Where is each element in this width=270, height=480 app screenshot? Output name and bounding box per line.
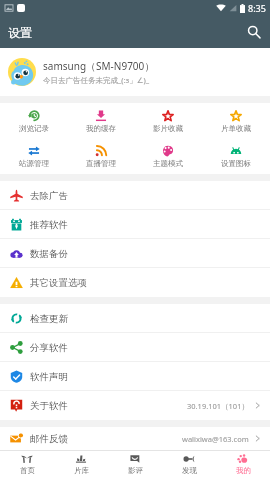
button[interactable]: 首页 xyxy=(0,451,54,480)
staticText: 首页 xyxy=(20,466,35,475)
staticText: 8:35 xyxy=(248,2,266,14)
button[interactable]: 影评 xyxy=(108,451,162,480)
staticText: 主题模式 xyxy=(153,159,183,168)
staticText: 去除广告 xyxy=(30,190,68,202)
staticText: 关于软件 xyxy=(30,400,68,412)
button[interactable]: 邮件反馈 xyxy=(0,427,270,450)
button[interactable]: 分享软件 xyxy=(0,333,270,362)
staticText: samsung（SM-N9700） xyxy=(43,59,155,73)
staticText: 分享软件 xyxy=(30,342,68,354)
staticText: 片单收藏 xyxy=(221,124,251,133)
button[interactable]: Search xyxy=(238,16,270,48)
button[interactable]: 主题模式 xyxy=(134,139,202,174)
button[interactable]: 片单收藏 xyxy=(202,103,270,139)
staticText: 检查更新 xyxy=(30,313,68,325)
button[interactable]: 直播管理 xyxy=(67,139,134,174)
button[interactable]: samsung（SM-N9700） xyxy=(0,48,270,96)
button[interactable]: 设置图标 xyxy=(202,139,270,174)
button[interactable]: 软件声明 xyxy=(0,362,270,391)
button[interactable]: 我的缓存 xyxy=(67,103,134,139)
button[interactable]: 推荐软件 xyxy=(0,210,270,239)
button[interactable]: 检查更新 xyxy=(0,304,270,333)
staticText: 站源管理 xyxy=(19,159,49,168)
staticText: 我的缓存 xyxy=(86,124,116,133)
staticText: 影片收藏 xyxy=(153,124,183,133)
button[interactable]: 影片收藏 xyxy=(134,103,202,139)
staticText: 影评 xyxy=(128,466,143,475)
staticText: 30.19.101（101） xyxy=(187,401,249,411)
button[interactable]: 关于软件 xyxy=(0,391,270,420)
staticText: 其它设置选项 xyxy=(30,277,87,289)
staticText: 今日去广告任务未完成_(:з」∠)_ xyxy=(43,75,150,85)
staticText: 设置 xyxy=(8,25,32,40)
staticText: walixiwa@163.com xyxy=(182,434,249,444)
button[interactable]: 我的 xyxy=(216,451,270,480)
staticText: 邮件反馈 xyxy=(30,433,68,445)
button[interactable]: 去除广告 xyxy=(0,181,270,210)
staticText: 数据备份 xyxy=(30,248,68,260)
button[interactable]: 浏览记录 xyxy=(0,103,67,139)
staticText: 片库 xyxy=(74,466,89,475)
button[interactable]: 片库 xyxy=(54,451,108,480)
button[interactable]: 数据备份 xyxy=(0,239,270,268)
button[interactable]: 发现 xyxy=(162,451,216,480)
staticText: 直播管理 xyxy=(86,159,116,168)
button[interactable]: 站源管理 xyxy=(0,139,67,174)
staticText: 软件声明 xyxy=(30,371,68,383)
staticText: 浏览记录 xyxy=(19,124,49,133)
staticText: 设置图标 xyxy=(221,159,251,168)
staticText: 发现 xyxy=(182,466,197,475)
button[interactable]: 其它设置选项 xyxy=(0,268,270,297)
staticText: 推荐软件 xyxy=(30,219,68,231)
staticText: 我的 xyxy=(236,466,251,475)
